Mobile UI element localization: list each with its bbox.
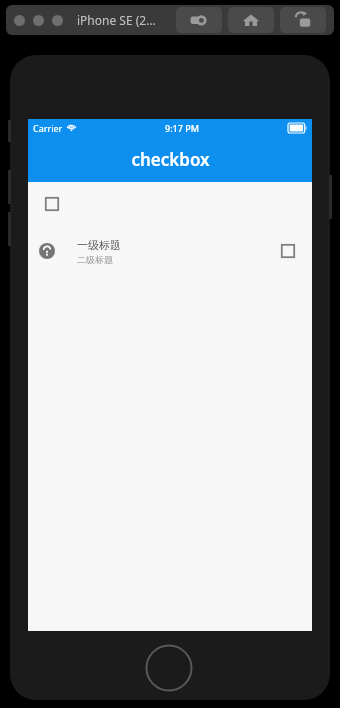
staticText: Carrier [33,122,63,134]
button[interactable]: Screenshot [176,7,222,33]
button[interactable]: Window control [14,15,25,26]
button[interactable]: Window control [33,15,44,26]
button[interactable]: 一级标题 [28,229,312,273]
button[interactable]: Checkbox [39,191,65,217]
staticText: iPhone SE (2… [77,12,156,28]
button[interactable]: Rotate [280,7,326,33]
staticText: 一级标题 [77,238,121,252]
staticText: checkbox [131,148,210,171]
button[interactable]: Window control [52,15,63,26]
staticText: 二级标题 [77,254,113,265]
button[interactable]: Home [228,7,274,33]
staticText: 9:17 PM [165,122,199,134]
button[interactable]: Checkbox [275,238,301,264]
